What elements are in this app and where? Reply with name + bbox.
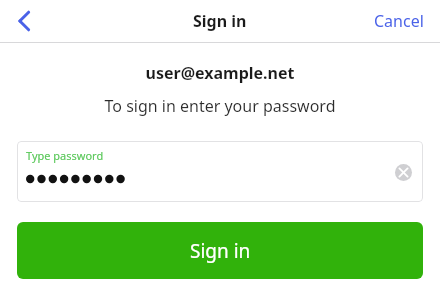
button[interactable]: Back — [6, 1, 46, 41]
staticText: user@example.net — [0, 62, 440, 84]
staticText: Sign in — [193, 10, 247, 32]
staticText: Type password — [26, 148, 104, 163]
button[interactable]: Type password — [17, 141, 423, 202]
button[interactable]: Clear password — [390, 159, 416, 185]
staticText: Sign in — [190, 238, 251, 264]
button[interactable]: Cancel — [358, 2, 440, 40]
staticText: To sign in enter your password — [0, 95, 440, 117]
button[interactable]: Sign in — [17, 222, 423, 279]
staticText: Cancel — [374, 10, 424, 32]
